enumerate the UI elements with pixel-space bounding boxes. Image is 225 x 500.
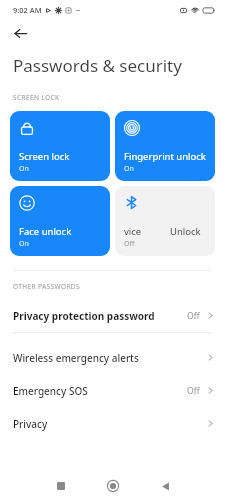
staticText: Screen lock (19, 150, 70, 163)
staticText: Privacy (13, 417, 48, 431)
button[interactable]: Face unlock (10, 186, 110, 256)
staticText: Wireless emergency alerts (13, 351, 139, 365)
staticText: Off (187, 310, 200, 322)
staticText: On (124, 164, 134, 174)
button[interactable]: Wireless emergency alerts (0, 341, 225, 374)
button[interactable]: Recents (43, 472, 79, 500)
button[interactable]: Privacy protection password (0, 299, 225, 332)
staticText: Off (124, 239, 135, 249)
staticText: On (19, 164, 29, 174)
button[interactable]: Fingerprint unlock (115, 111, 215, 181)
staticText: vice (124, 225, 142, 238)
button[interactable]: Screen lock (10, 111, 110, 181)
staticText: Passwords & security (13, 54, 182, 77)
button[interactable]: Back (8, 21, 32, 45)
button[interactable]: Home (95, 472, 131, 500)
staticText: Off (187, 385, 200, 397)
button[interactable]: vice (115, 186, 215, 256)
button[interactable]: Privacy (0, 407, 225, 440)
staticText: Fingerprint unlock (124, 150, 206, 163)
staticText: Unlock (170, 225, 201, 238)
staticText: SCREEN LOCK (13, 93, 60, 102)
button[interactable]: Back (147, 472, 183, 500)
staticText: Emergency SOS (13, 384, 88, 398)
staticText: 9:02 AM (13, 5, 42, 15)
staticText: Face unlock (19, 225, 72, 238)
button[interactable]: Emergency SOS (0, 374, 225, 407)
staticText: Privacy protection password (13, 309, 155, 323)
staticText: OTHER PASSWORDS (13, 282, 80, 291)
staticText: On (19, 239, 29, 249)
